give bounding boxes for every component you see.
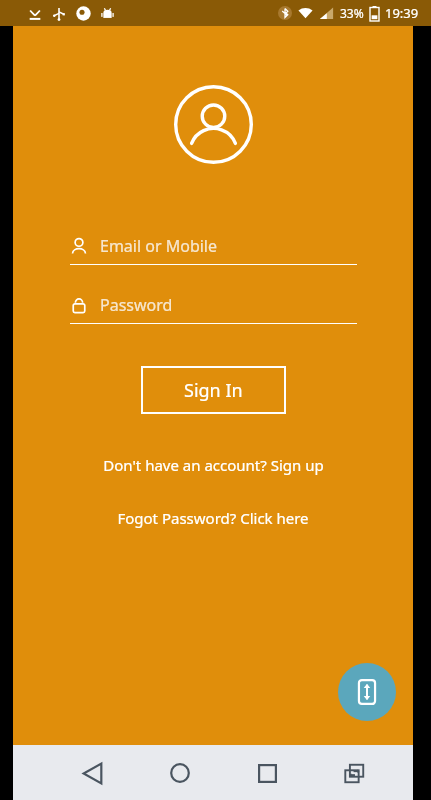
staticText: Sign In	[184, 378, 243, 403]
staticText: 19:39	[385, 4, 419, 22]
button[interactable]: Password	[70, 294, 357, 324]
button[interactable]: Recents	[243, 749, 291, 797]
button[interactable]: Don't have an account? Sign up	[13, 455, 413, 475]
button[interactable]: Resize screen	[338, 663, 396, 721]
staticText: 33%	[340, 5, 364, 21]
button[interactable]: Back	[68, 749, 116, 797]
staticText: Email or Mobile	[100, 235, 218, 257]
button[interactable]: Email or Mobile	[70, 235, 357, 265]
button[interactable]: Multi window	[330, 749, 378, 797]
button[interactable]: Sign In	[141, 366, 286, 414]
staticText: Password	[100, 294, 173, 316]
staticText: Don't have an account? Sign up	[103, 455, 324, 475]
button[interactable]: Home	[156, 749, 204, 797]
staticText: Fogot Password? Click here	[117, 508, 309, 528]
button[interactable]: Fogot Password? Click here	[13, 508, 413, 528]
